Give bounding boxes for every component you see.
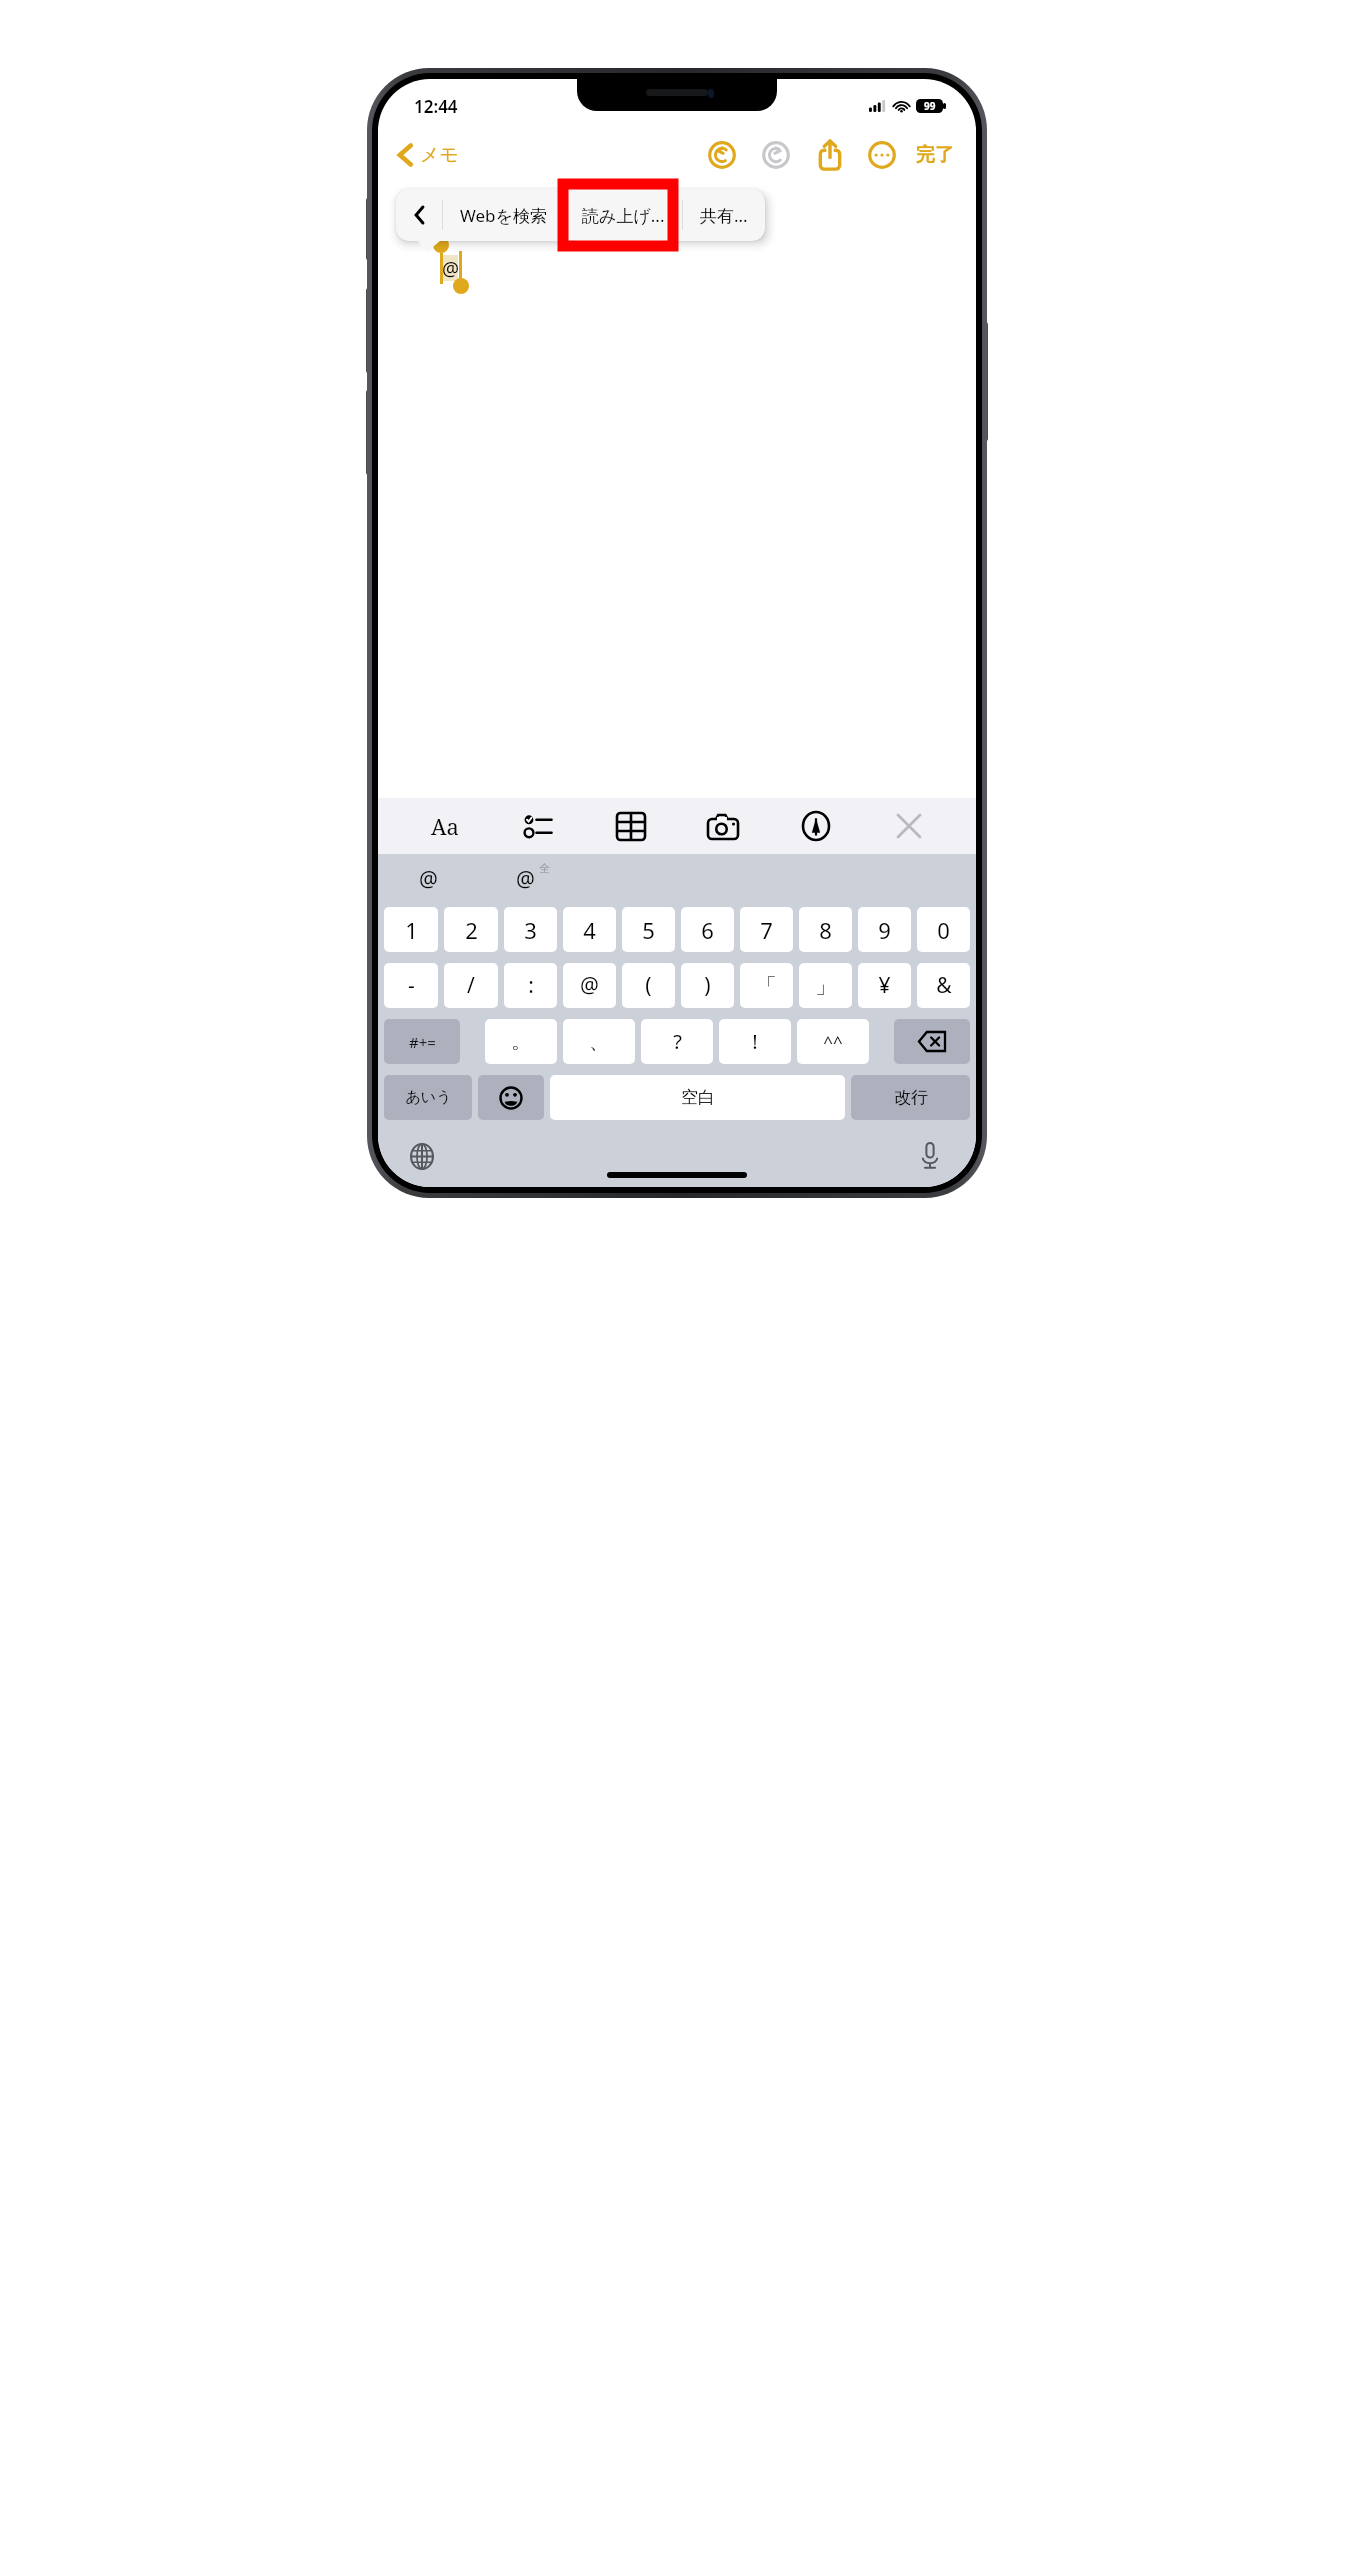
staticText: 」: [815, 973, 836, 999]
button[interactable]: /: [444, 963, 498, 1008]
button[interactable]: 4: [563, 907, 616, 952]
staticText: ^^: [823, 1030, 843, 1053]
staticText: #+=: [409, 1032, 436, 1052]
staticText: 9: [878, 915, 891, 945]
staticText: 、: [589, 1029, 609, 1054]
button[interactable]: ): [681, 963, 734, 1008]
staticText: 読み上げ: [400, 189, 526, 228]
button[interactable]: 2: [444, 907, 498, 952]
staticText: 12:44: [414, 95, 458, 118]
button[interactable]: @: [563, 963, 616, 1008]
staticText: 読み上げ...: [582, 204, 665, 227]
button[interactable]: 、: [563, 1019, 635, 1064]
staticText: 4: [583, 915, 596, 945]
button[interactable]: !: [719, 1019, 791, 1064]
button[interactable]: 7: [740, 907, 793, 952]
button[interactable]: Text format: [419, 800, 471, 852]
staticText: &: [936, 971, 952, 1000]
staticText: 7: [760, 915, 773, 945]
staticText: 改行: [894, 1087, 928, 1108]
button[interactable]: :: [504, 963, 557, 1008]
button[interactable]: 3: [504, 907, 557, 952]
staticText: :: [528, 971, 534, 1000]
staticText: 6: [701, 915, 714, 945]
button[interactable]: 5: [622, 907, 675, 952]
button[interactable]: (: [622, 963, 675, 1008]
button[interactable]: Redo: [754, 133, 798, 177]
button[interactable]: &: [917, 963, 970, 1008]
staticText: ¥: [878, 971, 891, 1000]
button[interactable]: 読み上げ...: [565, 189, 682, 241]
staticText: 「: [756, 973, 777, 999]
button[interactable]: Dictation: [910, 1136, 950, 1176]
button[interactable]: ¥: [858, 963, 911, 1008]
button[interactable]: 8: [799, 907, 852, 952]
button[interactable]: -: [384, 963, 438, 1008]
staticText: 2: [465, 915, 478, 945]
staticText: @: [442, 256, 460, 282]
button[interactable]: 」: [799, 963, 852, 1008]
button[interactable]: Previous actions: [396, 189, 442, 241]
staticText: 1: [405, 915, 418, 945]
button[interactable]: Share: [808, 133, 852, 177]
button[interactable]: Backspace: [894, 1019, 970, 1064]
button[interactable]: Undo: [700, 133, 744, 177]
button[interactable]: 「: [740, 963, 793, 1008]
button[interactable]: ?: [641, 1019, 713, 1064]
button[interactable]: Camera: [697, 800, 749, 852]
staticText: @: [580, 971, 599, 1000]
staticText: 0: [937, 915, 950, 945]
staticText: 99: [924, 99, 936, 113]
button[interactable]: Webを検索: [443, 189, 564, 241]
button[interactable]: Table: [605, 800, 657, 852]
staticText: @: [516, 865, 535, 894]
button[interactable]: Change keyboard: [402, 1136, 442, 1176]
button[interactable]: メモ: [394, 137, 463, 173]
staticText: 共有...: [700, 204, 748, 227]
button[interactable]: 0: [917, 907, 970, 952]
staticText: あいう: [405, 1088, 452, 1107]
staticText: !: [752, 1028, 758, 1055]
staticText: Aa: [431, 811, 459, 841]
button[interactable]: Checklist: [512, 800, 564, 852]
button[interactable]: 9: [858, 907, 911, 952]
button[interactable]: #+=: [384, 1019, 460, 1064]
staticText: 5: [642, 915, 655, 945]
button[interactable]: 共有...: [683, 189, 765, 241]
staticText: 完了: [916, 143, 954, 167]
button[interactable]: @: [378, 854, 478, 904]
button[interactable]: あいう: [384, 1075, 472, 1120]
staticText: 8: [819, 915, 832, 945]
button[interactable]: 1: [384, 907, 438, 952]
staticText: 3: [524, 915, 537, 945]
button[interactable]: More options: [860, 133, 904, 177]
staticText: Webを検索: [460, 204, 547, 227]
button[interactable]: 完了: [910, 135, 960, 175]
staticText: ): [704, 971, 711, 1000]
staticText: 空白: [681, 1087, 715, 1108]
staticText: ?: [673, 1028, 682, 1055]
button[interactable]: 6: [681, 907, 734, 952]
staticText: (: [645, 971, 652, 1000]
button[interactable]: @: [478, 854, 588, 904]
staticText: -: [408, 971, 415, 1000]
button[interactable]: 空白: [550, 1075, 845, 1120]
staticText: /: [467, 971, 475, 1000]
button[interactable]: 改行: [851, 1075, 970, 1120]
staticText: 全: [539, 861, 550, 875]
button[interactable]: Close keyboard: [883, 800, 935, 852]
staticText: @: [419, 865, 438, 894]
button[interactable]: Markup: [790, 800, 842, 852]
staticText: メモ: [420, 143, 459, 167]
button[interactable]: 。: [485, 1019, 557, 1064]
staticText: 。: [511, 1029, 531, 1054]
button[interactable]: ^^: [797, 1019, 869, 1064]
button[interactable]: Emoji: [478, 1075, 544, 1120]
